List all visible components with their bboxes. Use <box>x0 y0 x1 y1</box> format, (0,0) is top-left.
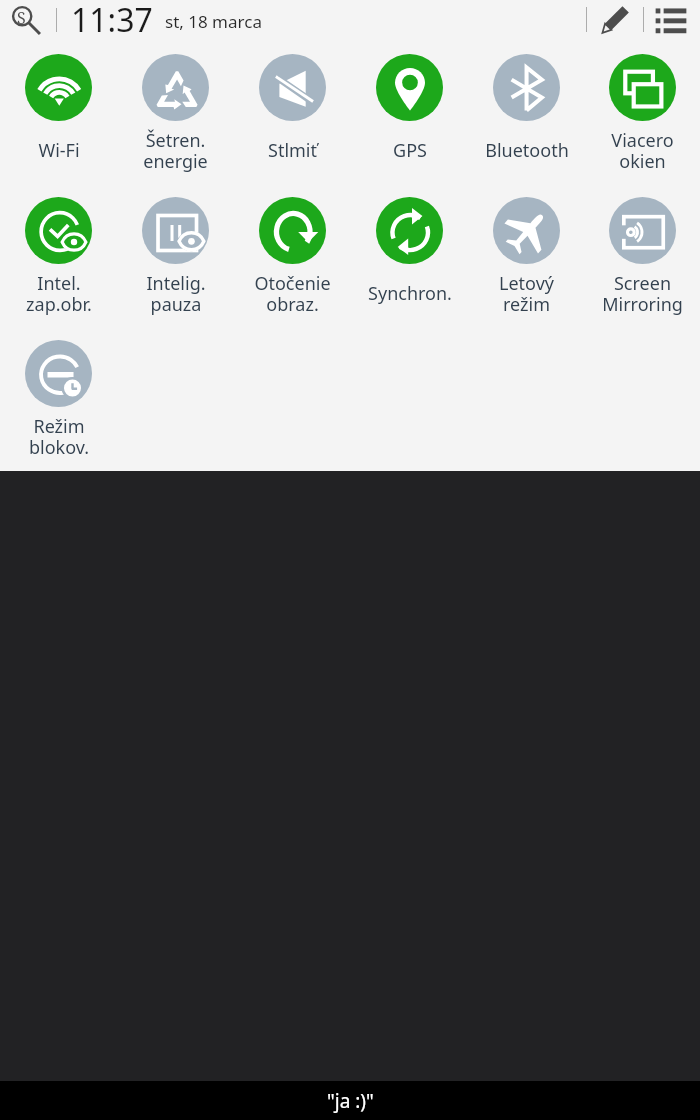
button[interactable]: Intelig. pauza <box>117 189 234 332</box>
staticText: Synchron. <box>368 281 452 306</box>
staticText: S <box>17 7 26 29</box>
staticText: Intelig. pauza <box>146 271 206 317</box>
button[interactable]: Intel. zap.obr. <box>0 189 117 332</box>
button[interactable]: Viacero okien <box>585 46 700 189</box>
staticText: Screen Mirroring <box>602 271 683 317</box>
staticText: Viacero okien <box>611 128 674 174</box>
staticText: Intel. zap.obr. <box>26 271 92 317</box>
button[interactable]: Synchron. <box>351 189 468 332</box>
button[interactable]: Otočenie obraz. <box>234 189 351 332</box>
staticText: Otočenie obraz. <box>254 271 331 317</box>
button[interactable]: Režim blokov. <box>0 332 117 471</box>
staticText: Šetren. energie <box>143 128 208 174</box>
button[interactable]: Bluetooth <box>468 46 585 189</box>
button[interactable]: Screen Mirroring <box>585 189 700 332</box>
button[interactable]: S Finder <box>8 2 42 36</box>
staticText: 11:37 <box>71 0 153 42</box>
staticText: Bluetooth <box>485 138 569 163</box>
staticText: Režim blokov. <box>29 414 89 460</box>
staticText: Letový režim <box>499 271 554 317</box>
staticText: "ja :)" <box>327 1088 374 1114</box>
button[interactable]: Wi-Fi <box>0 46 117 189</box>
button[interactable]: Šetren. energie <box>117 46 234 189</box>
staticText: Stlmiť <box>268 138 317 163</box>
button[interactable]: List view <box>653 1 689 37</box>
staticText: GPS <box>393 138 427 163</box>
button[interactable]: Stlmiť <box>234 46 351 189</box>
button[interactable]: GPS <box>351 46 468 189</box>
button[interactable]: Edit <box>598 2 632 36</box>
button[interactable]: Letový režim <box>468 189 585 332</box>
staticText: Wi-Fi <box>38 138 80 163</box>
staticText: st, 18 marca <box>165 10 262 33</box>
